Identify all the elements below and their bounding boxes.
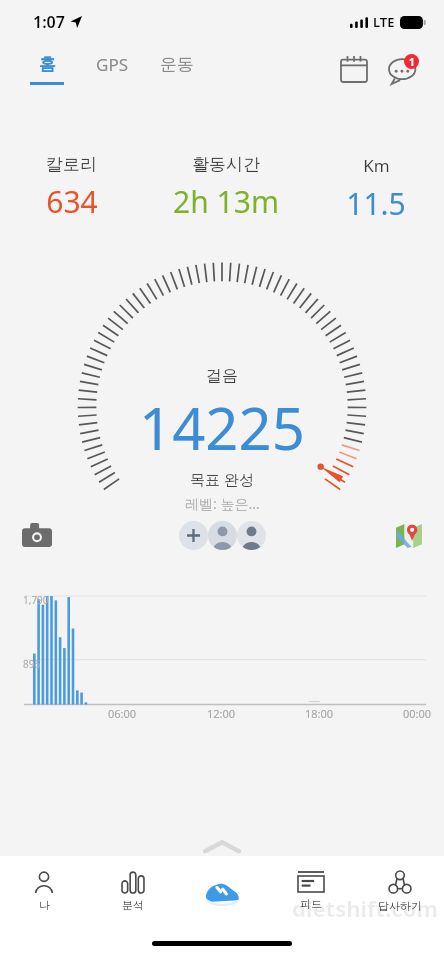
- button[interactable]: 나: [0, 856, 88, 926]
- staticText: 레벨: 높은…: [185, 494, 260, 513]
- button[interactable]: Friend: [208, 521, 237, 550]
- button[interactable]: 활동시간: [143, 152, 308, 224]
- staticText: 운동: [160, 54, 194, 75]
- button[interactable]: Camera: [18, 516, 56, 554]
- staticText: 나: [39, 898, 50, 912]
- staticText: 00:00: [403, 706, 432, 721]
- staticText: 답사하기: [378, 899, 422, 913]
- staticText: 634: [46, 181, 98, 222]
- button[interactable]: 답사하기: [355, 856, 444, 926]
- staticText: 1:07: [33, 11, 65, 33]
- button[interactable]: Expand: [0, 838, 444, 856]
- button[interactable]: Steps: [177, 856, 266, 926]
- button[interactable]: Friend: [237, 521, 266, 550]
- staticText: 목표 완성: [190, 469, 254, 489]
- button[interactable]: GPS: [80, 49, 144, 90]
- button[interactable]: 분석: [88, 856, 177, 926]
- staticText: 분석: [122, 898, 144, 912]
- staticText: Km: [363, 154, 390, 177]
- staticText: 06:00: [108, 706, 137, 721]
- button[interactable]: Calendar: [334, 49, 374, 89]
- staticText: LTE: [373, 13, 395, 31]
- staticText: 홈: [39, 54, 56, 75]
- staticText: 걸음: [206, 366, 238, 386]
- staticText: 활동시간: [192, 154, 260, 175]
- button[interactable]: Messages: [382, 47, 426, 91]
- staticText: 1,790: [23, 593, 49, 607]
- staticText: dietshift.com: [292, 893, 438, 923]
- button[interactable]: 홈: [14, 50, 80, 89]
- staticText: 11.5: [346, 183, 406, 224]
- button[interactable]: Add friend: [179, 521, 208, 550]
- staticText: 칼로리: [46, 154, 97, 175]
- staticText: 895: [23, 657, 41, 671]
- staticText: 14225: [139, 388, 305, 467]
- staticText: 18:00: [305, 706, 334, 721]
- staticText: GPS: [96, 53, 128, 76]
- button[interactable]: Map: [390, 516, 428, 554]
- button[interactable]: 운동: [144, 50, 210, 89]
- staticText: 1: [409, 55, 415, 69]
- button[interactable]: 피드: [266, 856, 355, 926]
- staticText: 피드: [300, 897, 322, 911]
- staticText: 2h 13m: [173, 181, 279, 222]
- button[interactable]: 칼로리: [0, 152, 143, 224]
- button[interactable]: Km: [308, 152, 444, 226]
- staticText: 12:00: [207, 706, 236, 721]
